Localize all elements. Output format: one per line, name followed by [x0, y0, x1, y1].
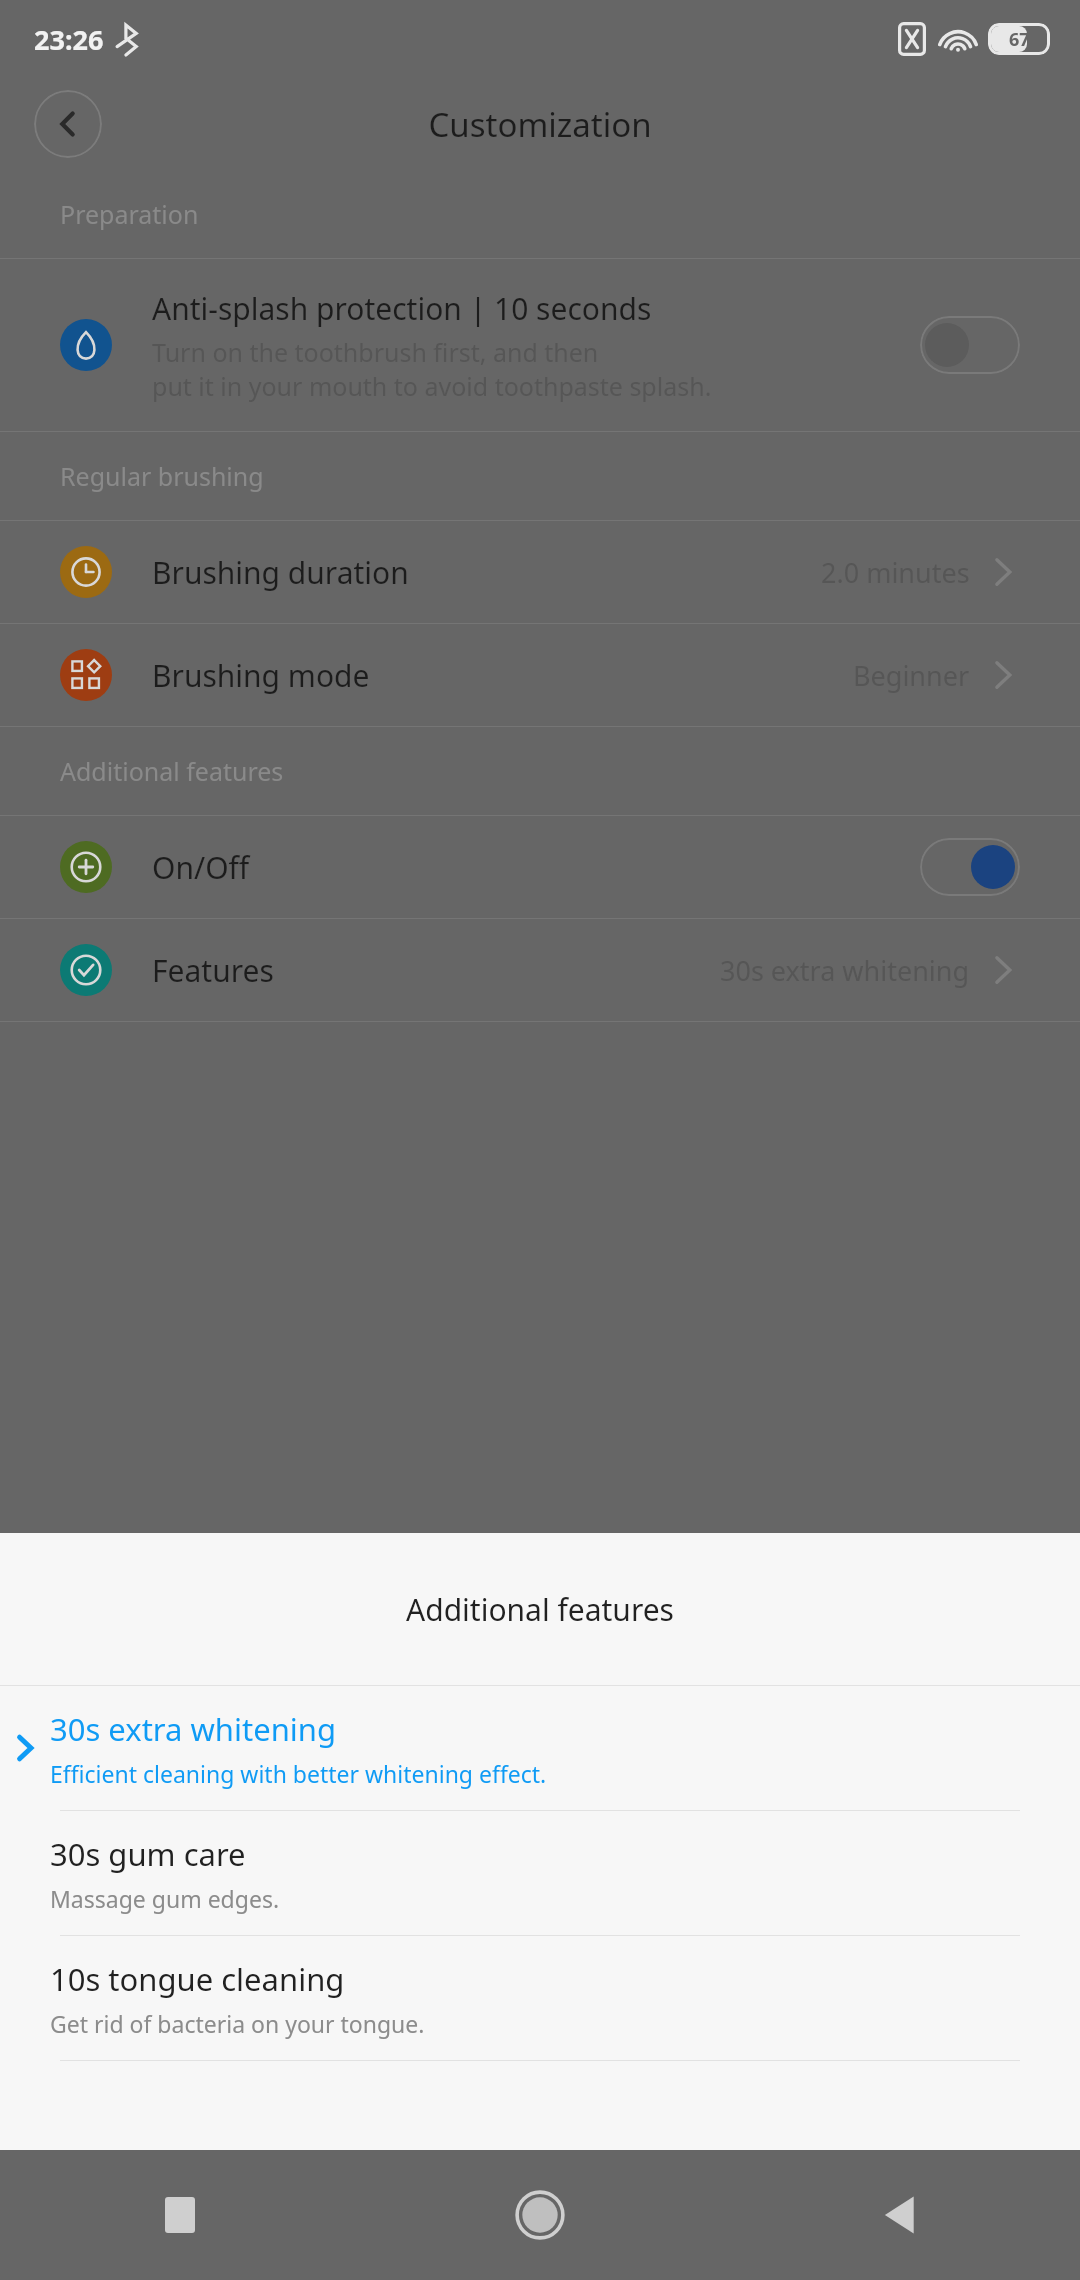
button[interactable]: Anti-splash protection | 10 seconds [0, 259, 1080, 431]
staticText: 67 [1009, 27, 1030, 52]
staticText: Get rid of bacteria on your tongue. [50, 2008, 425, 2039]
staticText: 30s extra whitening [720, 952, 970, 989]
staticText: Regular brushing [60, 459, 264, 493]
button[interactable]: Back [720, 2150, 1080, 2280]
button[interactable] [920, 838, 1020, 896]
staticText: Turn on the toothbrush first, and then [152, 335, 599, 369]
staticText: 10s tongue cleaning [50, 1958, 345, 2000]
button[interactable]: 10s tongue cleaning [0, 1936, 1080, 2061]
button[interactable] [920, 316, 1020, 374]
button[interactable]: Features [0, 919, 1080, 1021]
button[interactable]: On/Off [0, 816, 1080, 918]
staticText: Beginner [853, 657, 970, 694]
staticText: Additional features [406, 1589, 674, 1630]
staticText: Features [152, 950, 720, 991]
staticText: put it in your mouth to avoid toothpaste… [152, 369, 712, 403]
staticText: Additional features [60, 754, 284, 788]
button[interactable]: 30s extra whitening [0, 1686, 1080, 1811]
button[interactable]: Brushing mode [0, 624, 1080, 726]
staticText: Preparation [60, 197, 199, 231]
staticText: Massage gum edges. [50, 1883, 280, 1914]
button[interactable]: Back [34, 90, 102, 158]
button[interactable]: Home [360, 2150, 720, 2280]
staticText: Brushing mode [152, 655, 853, 696]
staticText: 30s gum care [50, 1833, 246, 1875]
staticText: Brushing duration [152, 552, 821, 593]
staticText: Efficient cleaning with better whitening… [50, 1758, 547, 1789]
button[interactable]: 30s gum care [0, 1811, 1080, 1936]
staticText: On/Off [152, 847, 920, 888]
staticText: 2.0 minutes [821, 554, 970, 591]
staticText: 23:26 [34, 21, 104, 58]
button[interactable]: Recents [0, 2150, 360, 2280]
staticText: 30s extra whitening [50, 1708, 337, 1750]
button[interactable]: Brushing duration [0, 521, 1080, 623]
staticText: Anti-splash protection | 10 seconds [152, 288, 652, 329]
staticText: Customization [0, 102, 1080, 147]
